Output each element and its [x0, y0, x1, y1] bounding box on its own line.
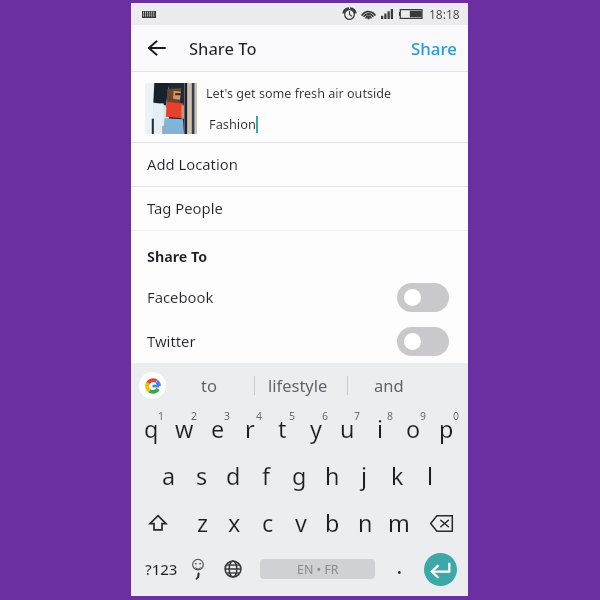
staticText: i [377, 413, 384, 445]
staticText: f [262, 460, 271, 492]
button[interactable]: Twitter [131, 320, 468, 363]
button[interactable]: and [347, 363, 431, 407]
button[interactable]: 0 [430, 407, 463, 453]
staticText: Share [411, 37, 457, 60]
staticText: z [197, 507, 208, 539]
button[interactable]: ?123 [136, 546, 186, 592]
staticText: g [292, 460, 307, 492]
button[interactable]: 6 [299, 407, 332, 453]
staticText: x [228, 507, 241, 539]
staticText: h [325, 460, 340, 492]
button[interactable]: k [381, 453, 414, 499]
staticText: 0 [453, 409, 460, 423]
button[interactable]: h [316, 453, 349, 499]
button[interactable]: Backspace [414, 500, 468, 546]
button[interactable]: j [348, 453, 381, 499]
button[interactable]: x [218, 500, 251, 546]
button[interactable]: Shift [131, 500, 185, 546]
staticText: k [391, 460, 404, 492]
staticText: t [278, 413, 287, 445]
button[interactable]: n [349, 500, 382, 546]
button[interactable]: g [283, 453, 316, 499]
button[interactable]: Enter [424, 553, 457, 586]
staticText: 3 [224, 409, 231, 423]
staticText: Twitter [147, 331, 196, 351]
staticText: j [361, 460, 368, 492]
button[interactable]: s [185, 453, 218, 499]
button[interactable]: Back [136, 27, 178, 69]
staticText: ?123 [145, 559, 178, 579]
staticText: 4 [256, 409, 263, 423]
staticText: p [439, 413, 454, 445]
staticText: 1 [158, 409, 165, 423]
staticText: Share To [189, 37, 257, 59]
staticText: q [144, 413, 159, 445]
button[interactable]: z [186, 500, 219, 546]
button[interactable]: 7 [331, 407, 364, 453]
button[interactable]: lifestyle [256, 363, 340, 407]
staticText: 7 [354, 409, 361, 423]
button[interactable]: a [152, 453, 185, 499]
button[interactable]: f [250, 453, 283, 499]
button[interactable]: 5 [266, 407, 299, 453]
staticText: Tag People [147, 198, 223, 218]
staticText: d [226, 460, 241, 492]
staticText: l [427, 460, 434, 492]
button[interactable]: to [167, 363, 251, 407]
button[interactable]: Change language [215, 546, 251, 592]
button[interactable]: Tag People [131, 186, 468, 230]
staticText: a [162, 460, 176, 492]
staticText: 2 [191, 409, 198, 423]
staticText: lifestyle [268, 374, 328, 396]
button[interactable]: Google Search [139, 372, 166, 399]
staticText: y [310, 413, 322, 445]
button[interactable]: 4 [233, 407, 266, 453]
staticText: b [325, 507, 340, 539]
staticText: w [175, 413, 194, 445]
button[interactable]: m [382, 500, 415, 546]
staticText: . [397, 556, 402, 579]
staticText: v [295, 507, 307, 539]
staticText: 5 [289, 409, 296, 423]
staticText: 9 [420, 409, 427, 423]
staticText: to [201, 374, 217, 396]
button[interactable]: 1 [135, 407, 168, 453]
button[interactable]: EN • FR [260, 559, 375, 579]
button[interactable]: l [414, 453, 447, 499]
staticText: s [196, 460, 208, 492]
staticText: u [340, 413, 355, 445]
button[interactable]: v [284, 500, 317, 546]
button[interactable]: . [382, 546, 416, 592]
button[interactable]: c [251, 500, 284, 546]
staticText: r [245, 413, 255, 445]
staticText: Let's get some fresh air outside [206, 85, 392, 102]
staticText: Add Location [147, 154, 238, 174]
button[interactable]: 2 [168, 407, 201, 453]
button[interactable]: Share [400, 26, 468, 71]
staticText: o [406, 413, 421, 445]
button[interactable]: Emoji [180, 546, 216, 592]
button[interactable]: 8 [364, 407, 397, 453]
button[interactable]: Add Location [131, 142, 468, 186]
staticText: Facebook [147, 287, 214, 307]
staticText: n [358, 507, 373, 539]
button[interactable]: Facebook [131, 275, 468, 320]
staticText: 18:18 [429, 6, 460, 22]
button[interactable]: 9 [397, 407, 430, 453]
staticText: c [262, 507, 274, 539]
staticText: Share To [147, 247, 208, 266]
staticText: 8 [387, 409, 394, 423]
staticText: e [211, 413, 225, 445]
staticText: and [374, 374, 404, 396]
button[interactable]: b [316, 500, 349, 546]
staticText: Fashion [209, 115, 256, 132]
button[interactable]: d [217, 453, 250, 499]
staticText: 6 [322, 409, 329, 423]
staticText: EN • FR [297, 561, 339, 578]
button[interactable]: 3 [201, 407, 234, 453]
staticText: m [388, 507, 410, 539]
